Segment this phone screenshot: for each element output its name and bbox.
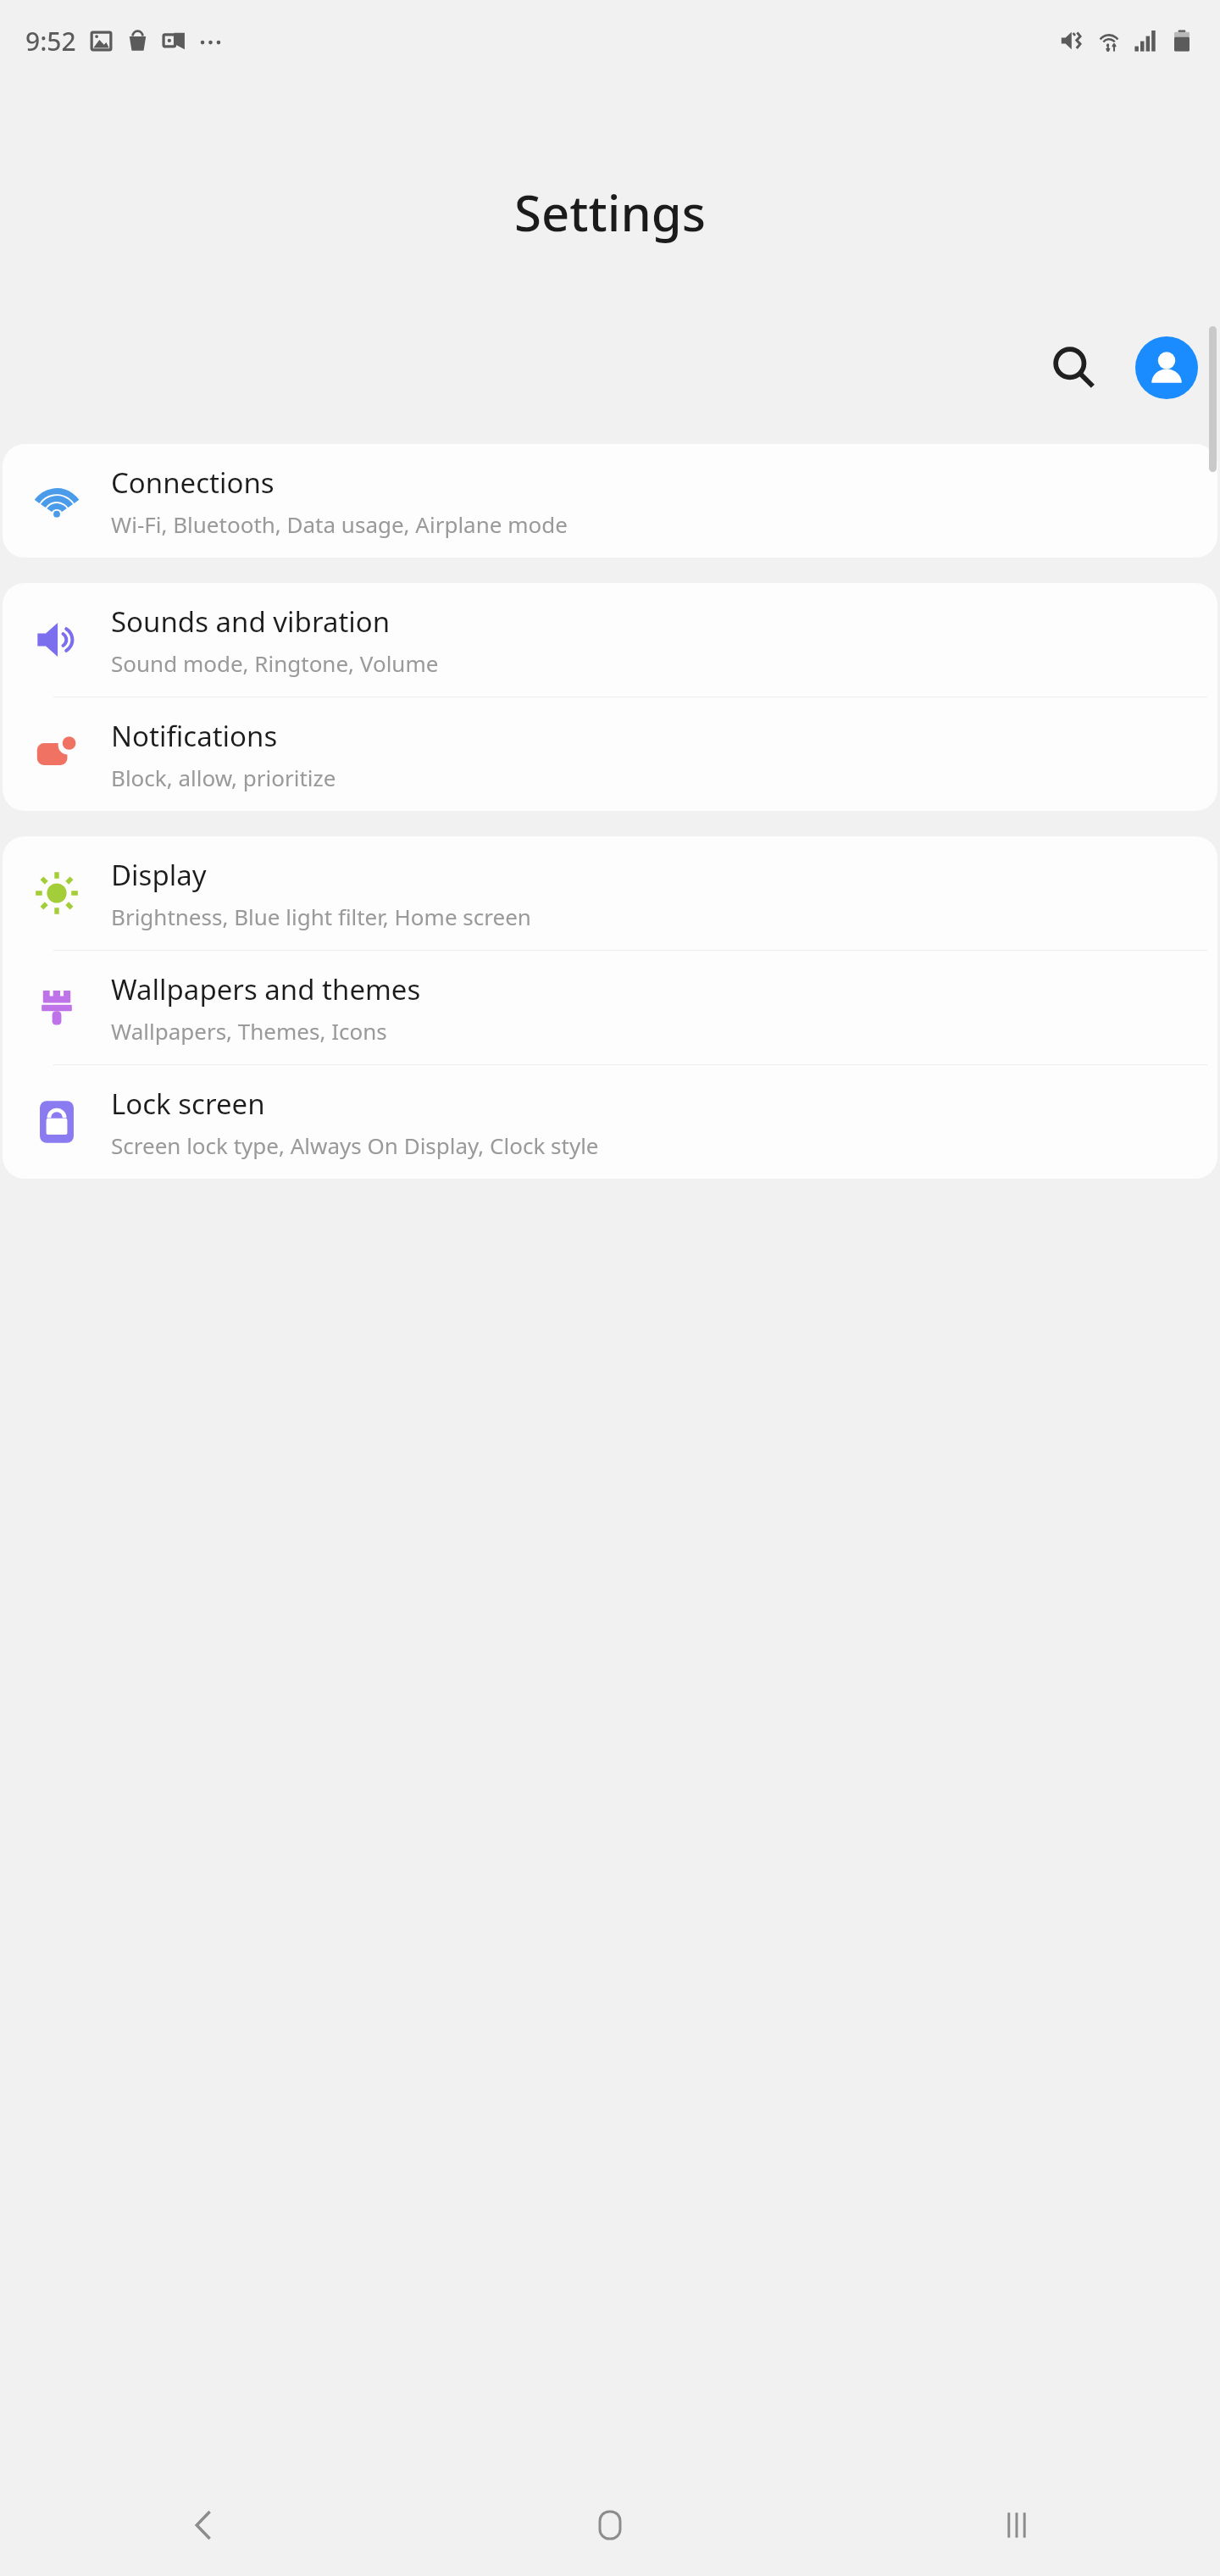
staticText: Display [111,856,207,894]
button[interactable]: Wallpapers and themes [3,951,1217,1064]
button[interactable]: Lock screen [3,1065,1217,1179]
button[interactable]: Account [1135,336,1198,399]
button[interactable]: Display [3,836,1217,950]
button[interactable]: Connections [3,444,1217,558]
staticText: 9:52 [25,24,76,58]
staticText: Wallpapers, Themes, Icons [111,1016,387,1046]
staticText: Notifications [111,717,278,755]
button[interactable]: Sounds and vibration [3,583,1217,697]
button[interactable]: Search [1037,330,1112,405]
button[interactable]: Home [407,2474,813,2576]
button[interactable]: Recents [813,2474,1220,2576]
staticText: Sounds and vibration [111,602,391,641]
staticText: Screen lock type, Always On Display, Clo… [111,1130,599,1160]
staticText: Settings [514,179,706,246]
button[interactable]: Back [0,2474,407,2576]
button[interactable]: Notifications [3,697,1217,811]
staticText: Wi-Fi, Bluetooth, Data usage, Airplane m… [111,509,568,539]
staticText: Sound mode, Ringtone, Volume [111,648,439,678]
staticText: Wallpapers and themes [111,970,421,1008]
staticText: Block, allow, prioritize [111,763,336,792]
staticText: Lock screen [111,1085,265,1123]
staticText: Brightness, Blue light filter, Home scre… [111,902,531,931]
staticText: Connections [111,464,274,502]
